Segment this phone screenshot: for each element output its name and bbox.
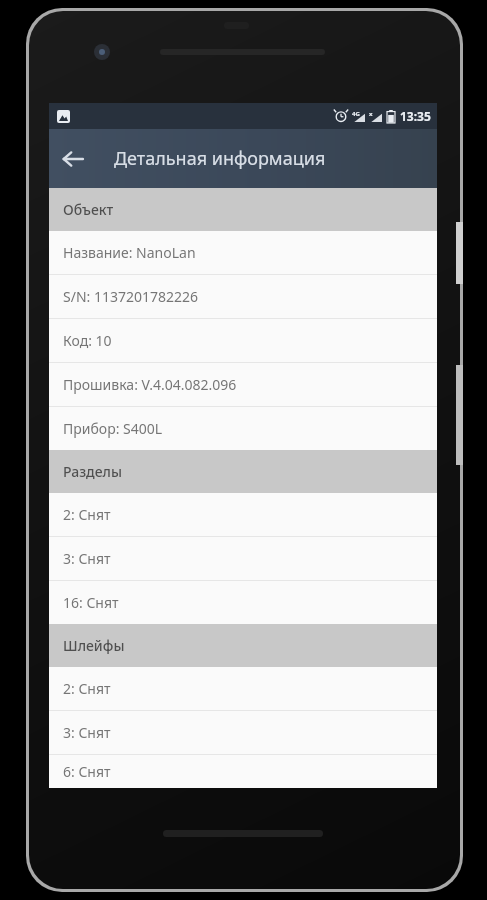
staticText: Название: NanoLan — [63, 243, 196, 262]
button[interactable]: Back — [49, 135, 97, 183]
button[interactable]: 3: Снят — [49, 711, 437, 754]
staticText: 2: Снят — [63, 505, 111, 524]
staticText: x — [369, 110, 373, 118]
staticText: Объект — [63, 200, 114, 219]
button[interactable]: Название: NanoLan — [49, 231, 437, 274]
button[interactable]: Код: 10 — [49, 319, 437, 362]
staticText: Прошивка: V.4.04.082.096 — [63, 375, 237, 394]
button[interactable]: Прибор: S400L — [49, 407, 437, 450]
staticText: 16: Снят — [63, 593, 119, 612]
staticText: Прибор: S400L — [63, 419, 163, 438]
staticText: 6: Снят — [63, 762, 111, 781]
staticText: 13:35 — [400, 108, 431, 124]
staticText: Разделы — [63, 462, 122, 481]
staticText: 4G — [352, 110, 360, 118]
staticText: Детальная информация — [114, 146, 326, 171]
button[interactable]: 2: Снят — [49, 667, 437, 710]
staticText: Шлейфы — [63, 636, 125, 655]
button[interactable]: 2: Снят — [49, 493, 437, 536]
button[interactable]: 16: Снят — [49, 581, 437, 624]
staticText: Код: 10 — [63, 331, 112, 350]
button[interactable]: Прошивка: V.4.04.082.096 — [49, 363, 437, 406]
staticText: S/N: 1137201782226 — [63, 287, 199, 306]
staticText: 2: Снят — [63, 679, 111, 698]
staticText: 3: Снят — [63, 723, 111, 742]
staticText: 3: Снят — [63, 549, 111, 568]
button[interactable]: 6: Снят — [49, 755, 437, 788]
button[interactable]: 3: Снят — [49, 537, 437, 580]
button[interactable]: S/N: 1137201782226 — [49, 275, 437, 318]
